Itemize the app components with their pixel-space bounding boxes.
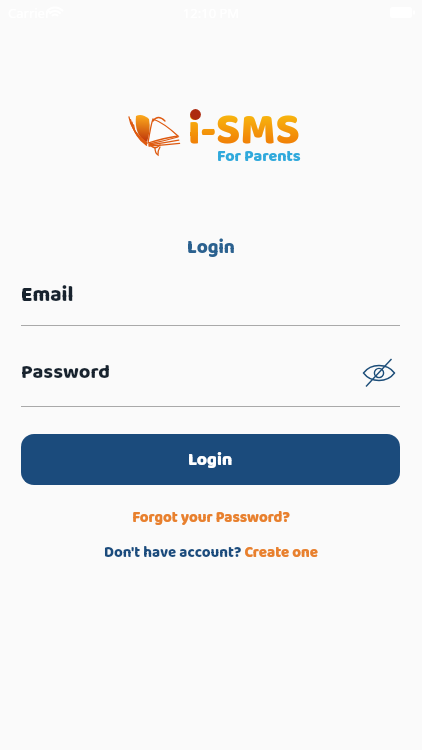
staticText: Don't have account? Create one: [0, 541, 422, 565]
staticText: For Parents: [217, 144, 301, 170]
staticText: Login: [188, 446, 233, 474]
staticText: Login: [0, 233, 422, 263]
staticText: Forgot your Password?: [0, 506, 422, 530]
staticText: Password: [21, 356, 110, 388]
staticText: Email: [21, 278, 74, 312]
staticText: i-SMS: [188, 96, 300, 166]
